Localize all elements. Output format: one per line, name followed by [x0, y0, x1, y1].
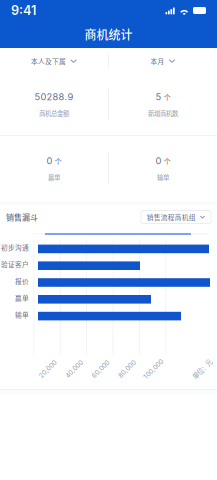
staticText: 5: [155, 91, 161, 102]
staticText: 本人及下属: [31, 56, 66, 66]
button[interactable]: 销售流程商机组: [141, 210, 211, 223]
staticText: 0: [155, 155, 161, 166]
staticText: 本月: [150, 56, 164, 66]
staticText: 销售流程商机组: [147, 212, 196, 222]
staticText: 销售漏斗: [6, 211, 38, 223]
staticText: 赢单: [48, 172, 60, 182]
staticText: 40,000: [63, 365, 85, 373]
staticText: 100,000: [141, 365, 166, 373]
staticText: 9:41: [11, 3, 36, 18]
staticText: 0: [46, 155, 52, 166]
staticText: 报价: [15, 276, 29, 286]
staticText: 60,000: [90, 365, 112, 373]
staticText: 商机统计: [84, 26, 132, 43]
staticText: 输单: [15, 310, 29, 319]
staticText: 个: [54, 156, 61, 166]
staticText: 80,000: [116, 365, 138, 373]
staticText: 个: [163, 156, 170, 166]
staticText: 初步沟通: [1, 243, 29, 252]
staticText: 商机总金额: [39, 108, 69, 118]
staticText: 验证客户: [1, 259, 29, 269]
staticText: 输单: [157, 172, 169, 182]
staticText: 单位：元: [190, 364, 214, 374]
button[interactable]: 本月: [109, 48, 217, 74]
staticText: 20,000: [37, 365, 59, 373]
staticText: 50288.9: [34, 91, 73, 102]
staticText: 新增商机数: [148, 108, 178, 118]
staticText: 个: [163, 92, 170, 102]
button[interactable]: 本人及下属: [0, 48, 108, 74]
staticText: 赢单: [15, 293, 29, 303]
